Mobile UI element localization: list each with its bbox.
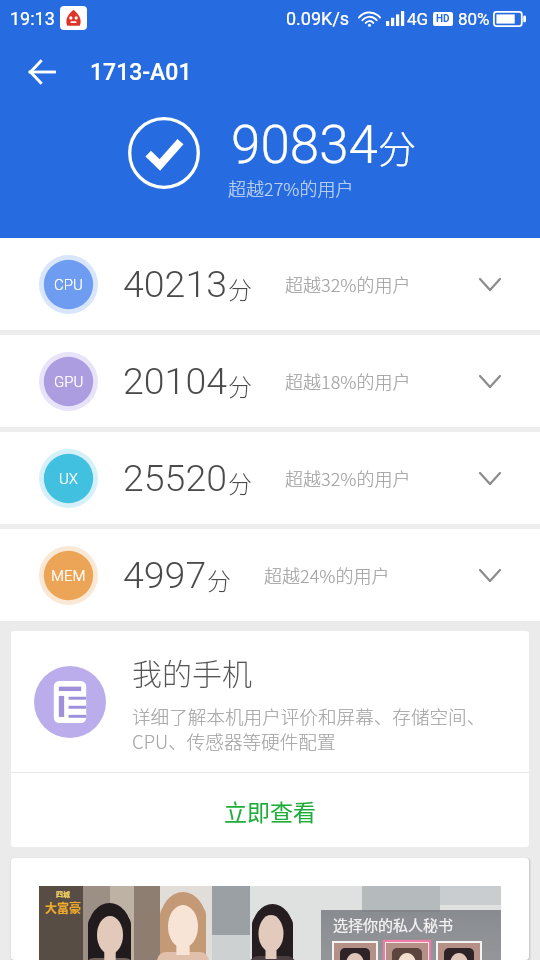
staticText: 立即查看 — [224, 794, 316, 827]
staticText: 超越24%的用户 — [264, 562, 390, 588]
staticText: 20104 — [123, 359, 228, 403]
staticText: HD — [436, 13, 450, 25]
staticText: 超越32%的用户 — [285, 465, 411, 491]
staticText: 40213 — [123, 262, 228, 306]
button[interactable]: CPU — [0, 238, 540, 330]
staticText: 选择你的私人秘书 — [333, 914, 454, 936]
staticText: 19:13 — [10, 8, 55, 29]
button[interactable]: 我的手机 — [11, 631, 529, 772]
staticText: 0.09K/s — [286, 8, 350, 29]
button[interactable]: Expand — [462, 547, 518, 603]
button[interactable]: Expand — [462, 450, 518, 506]
staticText: 4G — [407, 9, 429, 29]
staticText: UX — [59, 470, 79, 488]
staticText: CPU — [54, 276, 83, 294]
staticText: MEM — [51, 567, 86, 585]
button[interactable]: Expand — [462, 353, 518, 409]
button[interactable]: Back — [16, 46, 68, 98]
staticText: 四城 — [56, 889, 70, 899]
staticText: 分 — [228, 271, 252, 306]
staticText: 分 — [228, 465, 252, 500]
staticText: 详细了解本机用户评价和屏幕、存储空间、 CPU、传感器等硬件配置 — [132, 702, 486, 754]
button[interactable]: GPU — [0, 335, 540, 427]
staticText: 超越32%的用户 — [285, 271, 411, 297]
button[interactable]: Expand — [462, 256, 518, 312]
staticText: 分 — [378, 119, 417, 174]
button[interactable]: MEM — [0, 529, 540, 621]
staticText: 大富豪 — [45, 899, 82, 916]
button[interactable]: Advertisement — [39, 886, 529, 960]
staticText: 我的手机 — [132, 650, 252, 693]
staticText: 分 — [207, 562, 231, 597]
staticText: 4997 — [123, 553, 207, 597]
staticText: 80% — [458, 9, 490, 29]
staticText: 超越18%的用户 — [285, 368, 411, 394]
staticText: 超越27%的用户 — [228, 175, 354, 201]
staticText: 分 — [228, 368, 252, 403]
staticText: 90834 — [231, 114, 378, 176]
button[interactable]: UX — [0, 432, 540, 524]
staticText: 1713-A01 — [90, 59, 192, 86]
button[interactable]: 立即查看 — [11, 773, 529, 847]
staticText: GPU — [54, 373, 84, 391]
staticText: 25520 — [123, 456, 228, 500]
